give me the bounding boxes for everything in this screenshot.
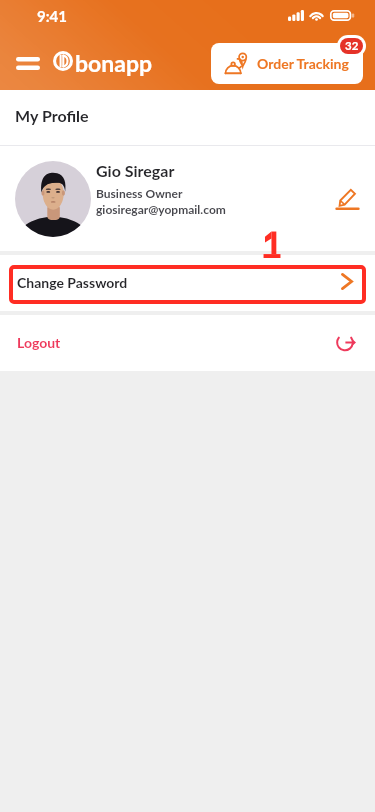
button[interactable]: Menu <box>10 47 46 79</box>
staticText: giosiregar@yopmail.com <box>96 202 226 216</box>
staticText: bonapp <box>75 49 153 77</box>
button[interactable]: Change Password <box>0 255 375 311</box>
staticText: Order Tracking <box>257 55 349 72</box>
staticText: Business Owner <box>96 186 183 200</box>
staticText: My Profile <box>15 106 89 125</box>
button[interactable]: Gio Siregar <box>0 146 375 251</box>
staticText: 9:41 <box>37 7 67 25</box>
button[interactable]: Edit profile <box>329 180 365 216</box>
staticText: 32 <box>345 39 359 53</box>
button[interactable]: Order Tracking <box>211 43 363 84</box>
button[interactable]: Logout <box>0 315 375 371</box>
staticText: Gio Siregar <box>96 161 175 180</box>
staticText: Change Password <box>17 274 128 291</box>
staticText: Logout <box>17 334 61 351</box>
